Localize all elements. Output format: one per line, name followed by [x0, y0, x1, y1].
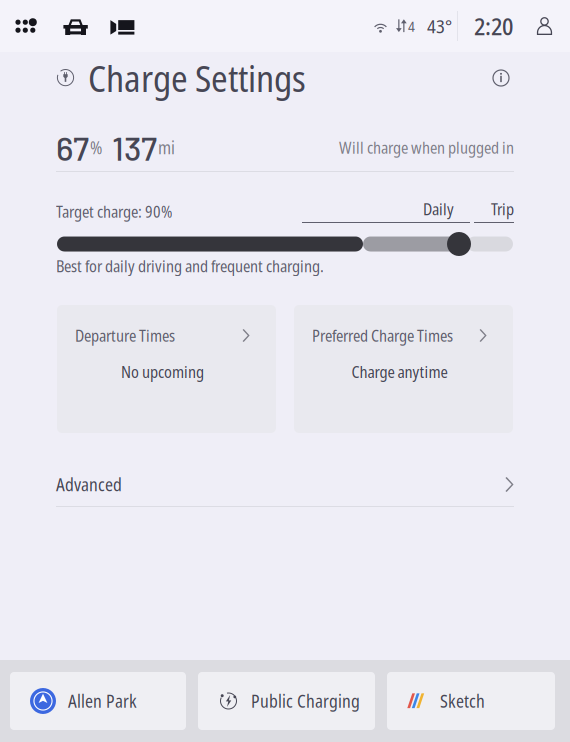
button[interactable]: Advanced	[56, 463, 514, 507]
button[interactable]: Media	[99, 0, 146, 52]
staticText: 43°	[427, 13, 452, 39]
staticText: Sketch	[440, 689, 485, 713]
staticText: Departure Times	[75, 325, 175, 346]
staticText: Will charge when plugged in	[339, 137, 514, 158]
staticText: Trip	[491, 198, 514, 220]
staticText: mi	[158, 136, 175, 159]
staticText: Allen Park	[68, 689, 137, 713]
staticText: Best for daily driving and frequent char…	[56, 255, 324, 277]
staticText: 4	[408, 16, 415, 36]
button[interactable]: Departure Times	[57, 305, 276, 433]
button[interactable]: Vehicle	[52, 0, 99, 52]
button[interactable]: Daily	[302, 200, 470, 223]
staticText: Daily	[423, 198, 454, 220]
button[interactable]: Allen Park	[10, 672, 186, 730]
staticText: Advanced	[56, 473, 122, 496]
staticText: Public Charging	[251, 689, 360, 713]
staticText: Preferred Charge Times	[312, 325, 453, 346]
staticText: Charge Settings	[88, 53, 306, 102]
button[interactable]: Apps	[0, 0, 52, 52]
staticText: %	[90, 136, 102, 159]
button[interactable]: Trip	[474, 200, 514, 223]
button[interactable]: Information	[488, 65, 514, 91]
button[interactable]: Profile	[536, 0, 553, 52]
staticText: No upcoming	[121, 361, 204, 383]
staticText: 67	[56, 127, 89, 167]
staticText: 2:20	[474, 10, 513, 42]
staticText: Charge anytime	[351, 361, 447, 383]
staticText: 137	[112, 127, 157, 167]
button[interactable]: Public Charging	[198, 672, 375, 730]
button[interactable]: Preferred Charge Times	[294, 305, 513, 433]
button[interactable]: Sketch	[387, 672, 555, 730]
staticText: Target charge: 90%	[56, 201, 172, 222]
